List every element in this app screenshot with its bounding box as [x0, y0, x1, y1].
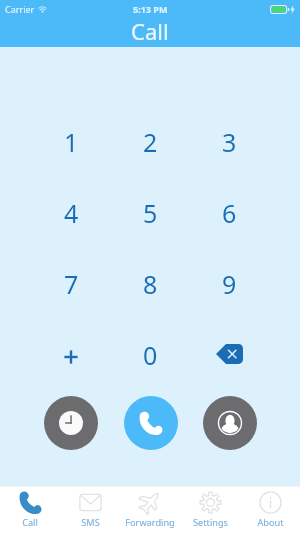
staticText: 3 — [222, 125, 237, 159]
staticText: 1 — [64, 125, 79, 159]
staticText: 2 — [143, 125, 158, 159]
staticText: About — [257, 516, 284, 529]
staticText: 5:13 PM — [133, 3, 168, 15]
button[interactable] — [31, 319, 111, 390]
staticText: Forwarding — [125, 516, 175, 529]
button[interactable]: Contacts — [203, 396, 257, 450]
staticText: 5 — [143, 196, 158, 230]
staticText: 7 — [64, 267, 79, 301]
button[interactable]: Recent calls — [44, 396, 98, 450]
button[interactable]: 0 — [111, 319, 190, 390]
button[interactable]: 2 — [111, 106, 190, 177]
button[interactable]: 6 — [190, 177, 269, 248]
staticText: SMS — [81, 516, 100, 529]
button[interactable]: About — [240, 487, 300, 533]
staticText: Call — [131, 16, 169, 46]
button[interactable]: 9 — [190, 248, 269, 319]
other: Delete — [216, 344, 243, 364]
staticText: 6 — [222, 196, 237, 230]
staticText: Carrier — [5, 3, 35, 15]
staticText: 8 — [143, 267, 158, 301]
button[interactable]: Delete — [190, 319, 269, 390]
button[interactable]: 7 — [31, 248, 111, 319]
button[interactable]: 1 — [31, 106, 111, 177]
button[interactable]: 4 — [31, 177, 111, 248]
staticText: 9 — [222, 267, 237, 301]
button[interactable]: Call — [124, 396, 178, 450]
staticText: Call — [22, 516, 38, 529]
staticText: 4 — [64, 196, 79, 230]
button[interactable]: Settings — [180, 487, 240, 533]
button[interactable]: SMS — [60, 487, 120, 533]
button[interactable]: Forwarding — [120, 487, 180, 533]
button[interactable]: Call — [0, 487, 60, 533]
button[interactable]: 8 — [111, 248, 190, 319]
button[interactable]: 3 — [190, 106, 269, 177]
button[interactable]: 5 — [111, 177, 190, 248]
staticText: 0 — [143, 338, 158, 372]
staticText: Settings — [193, 516, 228, 529]
